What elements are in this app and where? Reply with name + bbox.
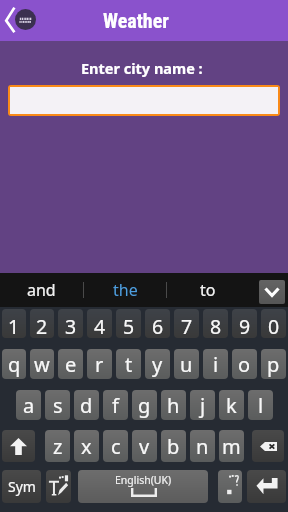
staticText: a [23, 392, 35, 419]
button[interactable]: 1 [2, 309, 26, 338]
button[interactable]: c [103, 430, 128, 462]
staticText: e [65, 351, 77, 378]
button[interactable]: j [190, 390, 215, 420]
button[interactable]: e [58, 349, 83, 379]
button[interactable]: 3 [58, 309, 83, 338]
staticText: l [258, 392, 264, 419]
staticText: k [226, 392, 237, 419]
staticText: v [139, 433, 150, 460]
button[interactable]: o [232, 349, 257, 379]
staticText: 1 [8, 313, 20, 338]
button[interactable]: l [248, 390, 273, 420]
button[interactable]: q [2, 349, 26, 379]
button[interactable]: x [74, 430, 99, 462]
staticText: 6 [152, 313, 164, 338]
button[interactable]: z [45, 430, 70, 462]
button[interactable]: 8 [203, 309, 228, 338]
button[interactable]: v [132, 430, 157, 462]
button[interactable]: Sym [2, 470, 41, 503]
staticText: x [81, 433, 92, 460]
button[interactable]: Backspace [252, 430, 284, 462]
staticText: t [125, 351, 133, 378]
staticText: Weather [103, 9, 169, 32]
button[interactable]: Period [218, 470, 242, 503]
staticText: w [34, 351, 50, 378]
staticText: 0 [268, 313, 280, 338]
staticText: m [222, 433, 241, 460]
staticText: 2 [36, 313, 48, 338]
button[interactable]: 0 [261, 309, 286, 338]
button[interactable]: h [161, 390, 186, 420]
staticText: r [95, 351, 104, 378]
button[interactable]: Back [0, 0, 46, 41]
staticText: g [138, 392, 151, 419]
staticText: c [111, 433, 121, 460]
staticText: 4 [94, 313, 106, 338]
staticText: 9 [239, 313, 251, 338]
button[interactable]: Text input options [46, 470, 71, 503]
button[interactable]: w [30, 349, 54, 379]
staticText: the [113, 279, 138, 301]
staticText: f [112, 392, 119, 419]
button[interactable]: the [84, 273, 166, 307]
button[interactable]: i [203, 349, 228, 379]
button[interactable]: 9 [232, 309, 257, 338]
button[interactable]: 4 [87, 309, 112, 338]
button[interactable]: to [167, 273, 248, 307]
staticText: u [180, 351, 193, 378]
staticText: to [200, 279, 216, 301]
button[interactable]: 7 [174, 309, 199, 338]
button[interactable]: m [219, 430, 244, 462]
staticText: y [152, 351, 163, 378]
staticText: 8 [210, 313, 222, 338]
staticText: English(UK) [115, 473, 172, 487]
staticText: 7 [181, 313, 193, 338]
button[interactable]: 2 [30, 309, 54, 338]
staticText: Sym [8, 477, 36, 496]
staticText: q [8, 351, 21, 378]
staticText: d [80, 392, 93, 419]
staticText: Enter city name : [81, 58, 203, 78]
button[interactable]: s [45, 390, 70, 420]
button[interactable]: t [116, 349, 141, 379]
button[interactable]: u [174, 349, 199, 379]
button[interactable]: Space [78, 470, 208, 503]
staticText: and [27, 279, 56, 301]
staticText: b [167, 433, 180, 460]
button[interactable]: r [87, 349, 112, 379]
staticText: p [267, 351, 280, 378]
staticText: h [167, 392, 180, 419]
staticText: 3 [65, 313, 77, 338]
button[interactable]: g [132, 390, 157, 420]
button[interactable]: Shift [2, 430, 35, 462]
button[interactable]: 6 [145, 309, 170, 338]
staticText: s [53, 392, 63, 419]
staticText: o [238, 351, 251, 378]
button[interactable]: f [103, 390, 128, 420]
staticText: j [200, 392, 206, 419]
button[interactable]: Enter [247, 470, 286, 503]
staticText: i [213, 351, 219, 378]
button[interactable]: and [0, 273, 83, 307]
button[interactable]: k [219, 390, 244, 420]
button[interactable]: b [161, 430, 186, 462]
button[interactable]: d [74, 390, 99, 420]
button[interactable]: n [190, 430, 215, 462]
staticText: 5 [123, 313, 135, 338]
button[interactable]: 5 [116, 309, 141, 338]
button[interactable]: y [145, 349, 170, 379]
staticText: n [196, 433, 209, 460]
staticText: z [53, 433, 63, 460]
button[interactable]: More suggestions [259, 280, 285, 304]
button[interactable]: a [16, 390, 41, 420]
button[interactable]: p [261, 349, 286, 379]
